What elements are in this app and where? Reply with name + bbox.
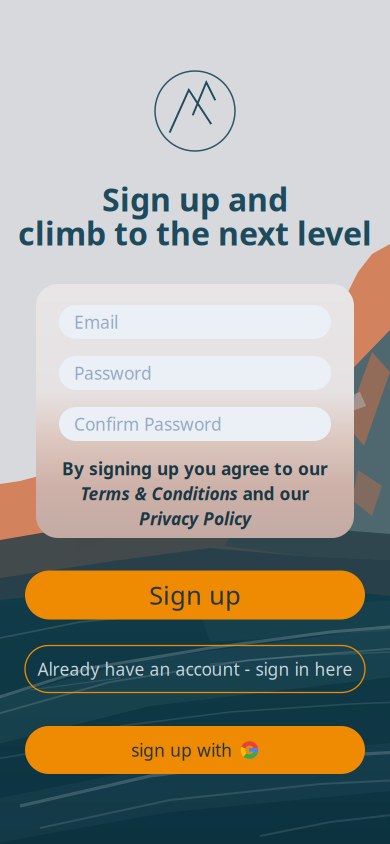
staticText: Sign up: [149, 578, 241, 612]
staticText: By signing up you agree to our: [62, 457, 328, 480]
button[interactable]: sign up with: [25, 726, 365, 774]
button[interactable]: Email: [59, 305, 331, 339]
button[interactable]: Password: [59, 356, 331, 390]
button[interactable]: Confirm Password: [59, 407, 331, 441]
staticText: sign up with: [131, 738, 232, 761]
staticText: Sign up and: [102, 178, 288, 220]
staticText: Password: [74, 361, 152, 384]
staticText: Already have an account - sign in here: [37, 657, 352, 680]
button[interactable]: Already have an account - sign in here: [25, 645, 365, 692]
staticText: Email: [74, 310, 118, 333]
button[interactable]: Sign up: [25, 570, 365, 619]
staticText: Privacy Policy: [139, 507, 251, 530]
staticText: Terms & Conditions and our: [80, 482, 309, 505]
staticText: climb to the next level: [18, 212, 372, 254]
staticText: Confirm Password: [74, 412, 222, 435]
